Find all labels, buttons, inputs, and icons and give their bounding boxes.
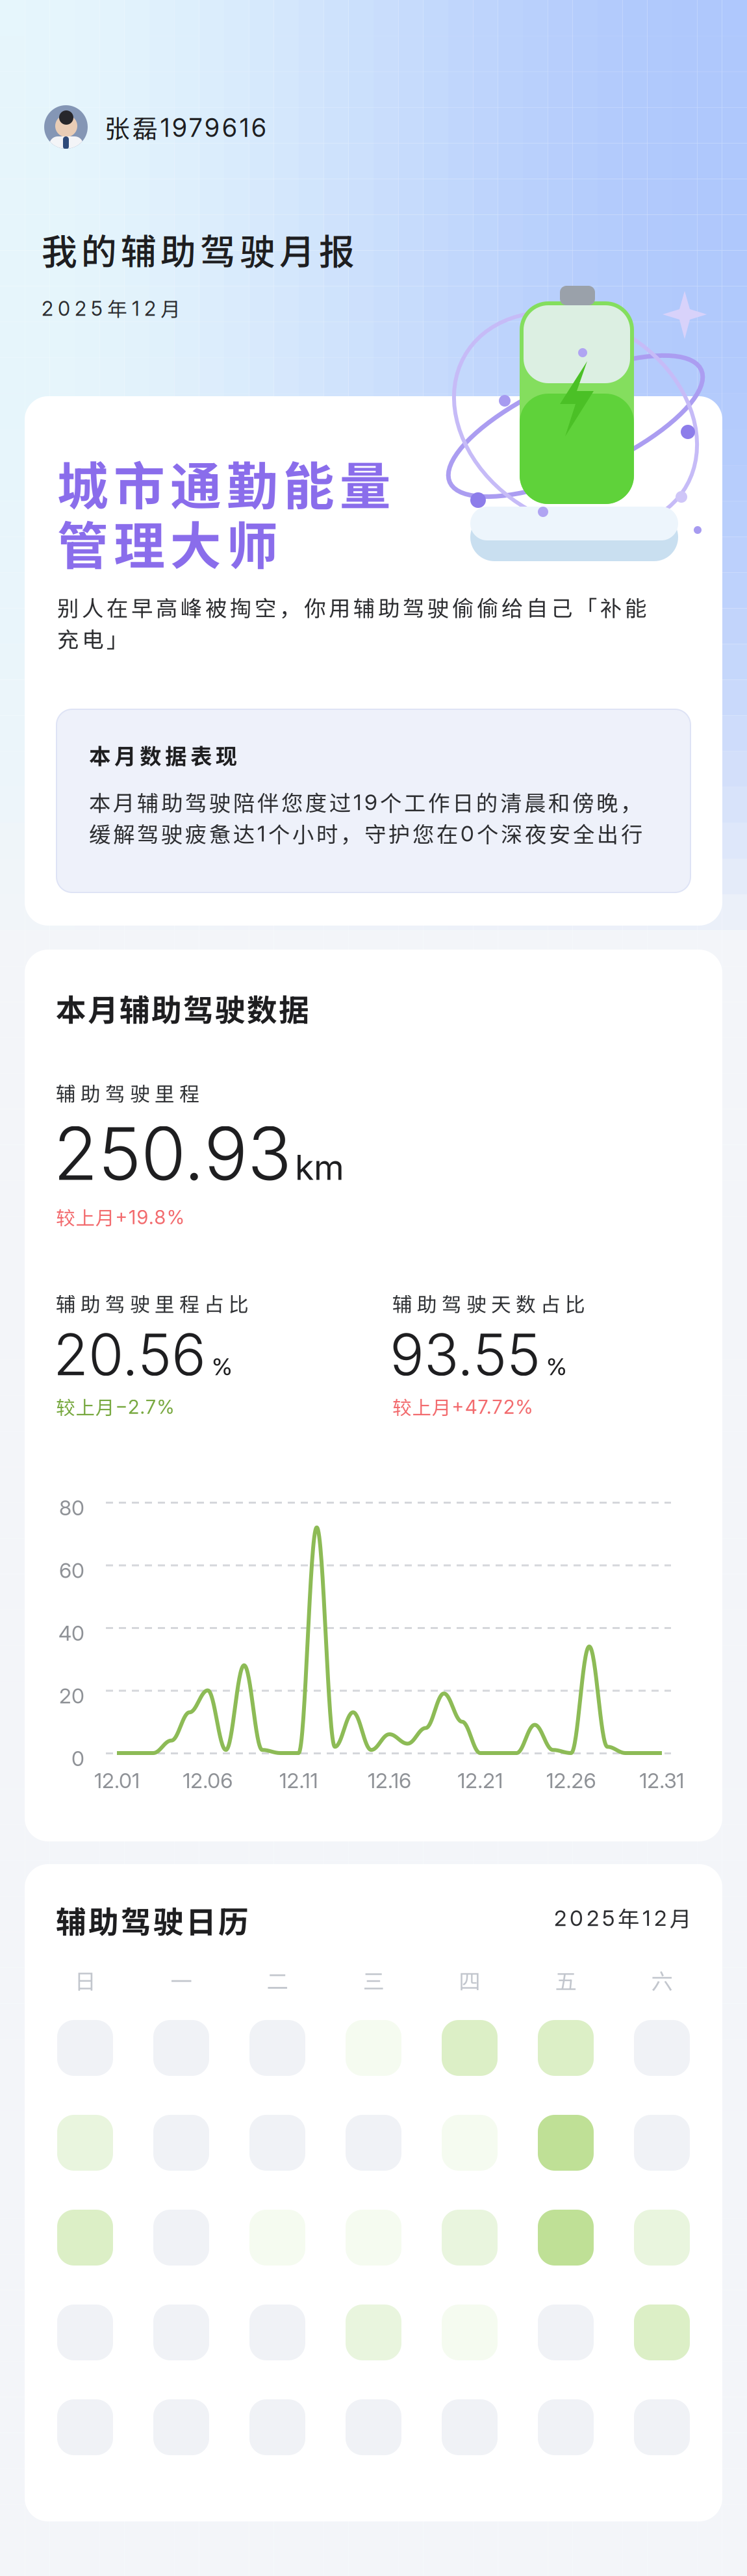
- staticText: 12.16: [368, 1768, 411, 1793]
- staticText: 12.06: [183, 1768, 233, 1793]
- staticText: 我的辅助驾驶月报: [42, 223, 355, 275]
- staticText: 2025年12月: [42, 294, 181, 322]
- staticText: 五: [555, 1964, 576, 1996]
- staticText: 较上月+47.72%: [392, 1393, 533, 1420]
- staticText: 12.21: [457, 1768, 503, 1793]
- staticText: 93.55: [390, 1320, 540, 1389]
- staticText: 12.31: [639, 1768, 684, 1793]
- staticText: 日: [74, 1964, 96, 1996]
- staticText: 本月辅助驾驶数据: [56, 986, 309, 1030]
- staticText: 0: [71, 1746, 84, 1771]
- staticText: 20: [59, 1683, 84, 1708]
- staticText: 城市通勤能量: [57, 446, 391, 520]
- staticText: 40: [58, 1621, 84, 1646]
- staticText: 20.56: [53, 1320, 206, 1389]
- staticText: 辅助驾驶天数占比: [392, 1289, 585, 1317]
- staticText: 12.01: [94, 1768, 140, 1793]
- staticText: 二: [267, 1964, 288, 1996]
- staticText: 60: [59, 1558, 84, 1583]
- staticText: 12.11: [279, 1768, 318, 1793]
- staticText: 六: [651, 1964, 673, 1996]
- staticText: 辅助驾驶日历: [56, 1898, 249, 1942]
- staticText: 一: [171, 1964, 192, 1996]
- staticText: 别人在早高峰被掏空，你用辅助驾驶偷偷给自己「补能充电」: [57, 591, 646, 654]
- staticText: 12.26: [546, 1768, 596, 1793]
- staticText: 三: [363, 1964, 384, 1996]
- staticText: 辅助驾驶里程: [56, 1078, 199, 1107]
- staticText: 张磊1979616: [105, 109, 266, 145]
- staticText: 较上月−2.7%: [56, 1393, 174, 1420]
- staticText: 250.93: [53, 1109, 292, 1197]
- staticText: 较上月+19.8%: [56, 1203, 184, 1231]
- staticText: 辅助驾驶里程占比: [56, 1289, 249, 1317]
- staticText: %: [212, 1353, 233, 1381]
- staticText: 80: [59, 1495, 84, 1520]
- button[interactable]: 张磊1979616: [0, 95, 460, 159]
- staticText: 2025年12月: [554, 1902, 691, 1933]
- staticText: 本月辅助驾驶陪伴您度过19个工作日的清晨和傍晚，缓解驾驶疲惫达1个小时，守护您在…: [89, 786, 642, 849]
- staticText: 管理大师: [57, 505, 278, 579]
- staticText: %: [546, 1353, 567, 1381]
- staticText: 四: [459, 1964, 480, 1996]
- staticText: 本月数据表现: [89, 739, 237, 771]
- staticText: km: [295, 1146, 344, 1188]
